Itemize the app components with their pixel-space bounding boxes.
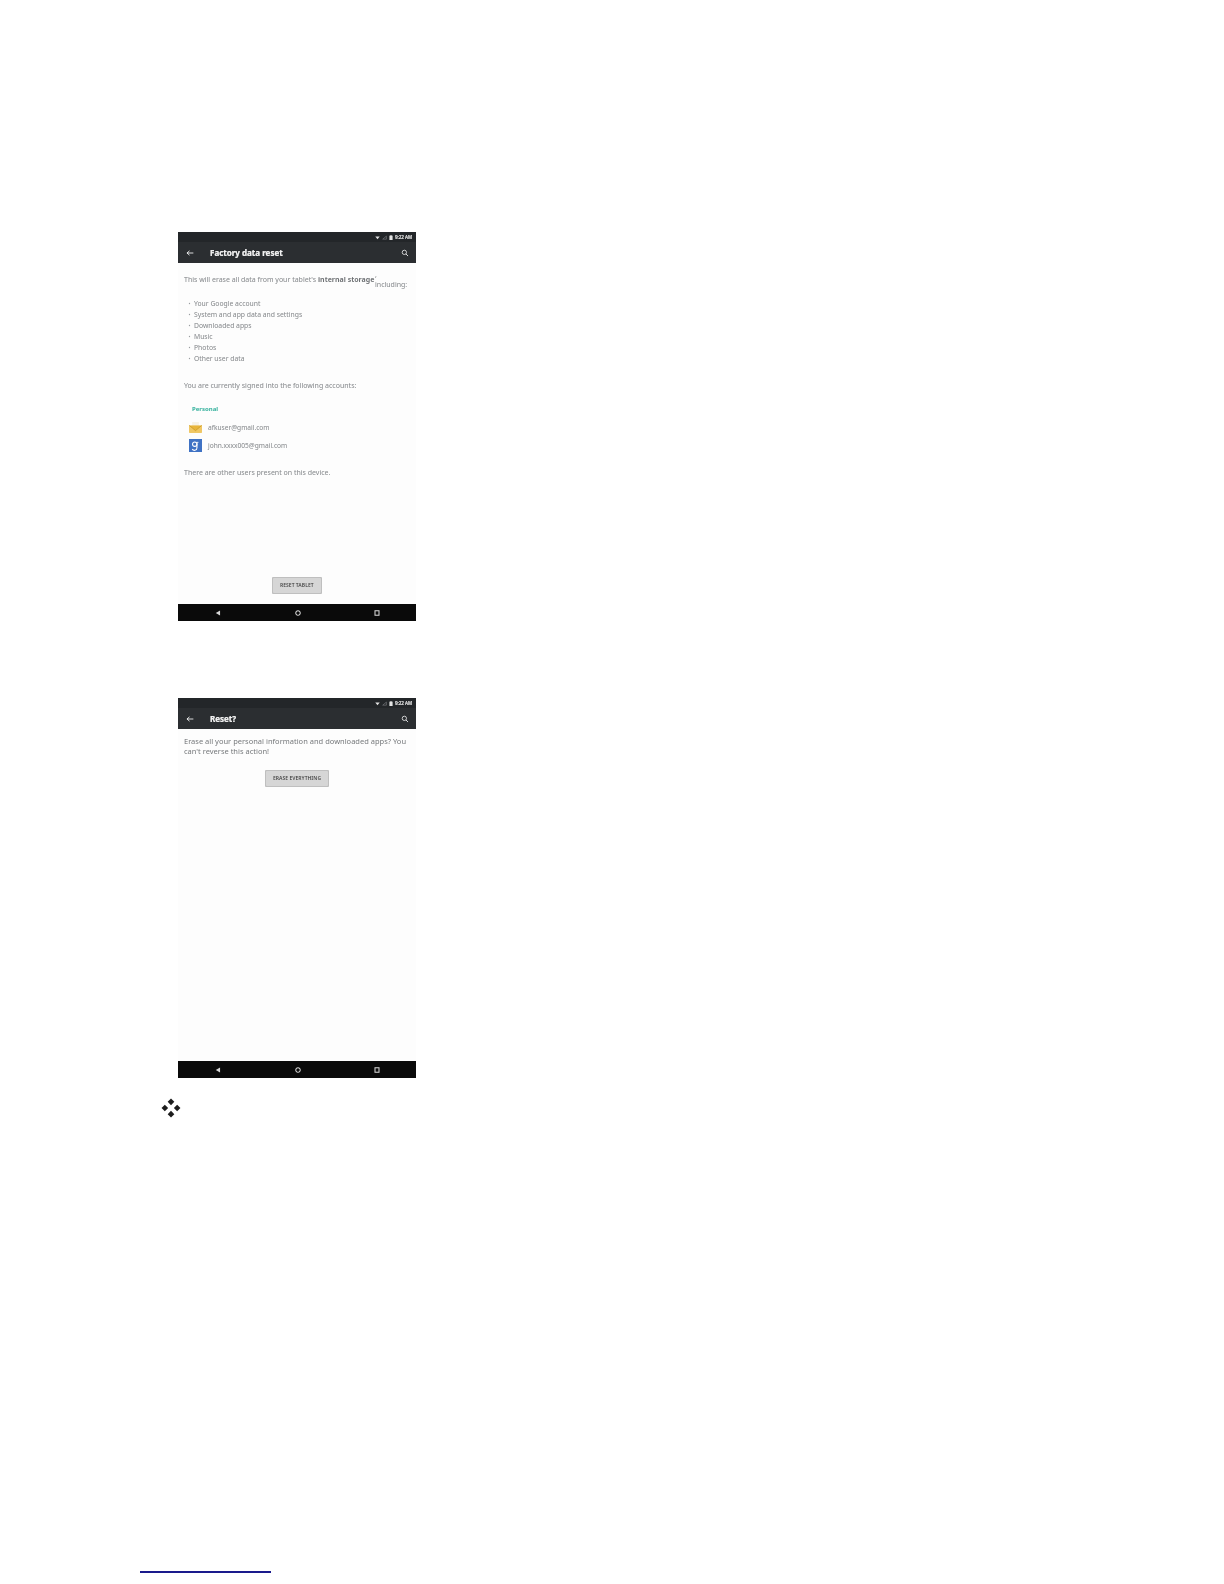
staticText: You are currently signed into the follow… bbox=[184, 381, 357, 391]
staticText: Your Google account bbox=[194, 299, 261, 308]
staticText: Photos bbox=[194, 343, 217, 352]
button[interactable]: ERASE EVERYTHING bbox=[266, 771, 328, 786]
staticText: 9:22 AM bbox=[395, 234, 413, 240]
staticText: john.xxxx005@gmail.com bbox=[208, 441, 288, 450]
button[interactable]: afkuser@gmail.com bbox=[184, 421, 410, 434]
button[interactable]: Search bbox=[398, 712, 411, 725]
staticText: ERASE EVERYTHING bbox=[273, 775, 321, 782]
staticText: Reset? bbox=[210, 713, 237, 724]
staticText: Downloaded apps bbox=[194, 321, 252, 330]
button[interactable]: Back bbox=[178, 604, 258, 621]
staticText: There are other users present on this de… bbox=[184, 468, 331, 478]
staticText: Erase all your personal information and … bbox=[184, 736, 410, 756]
button[interactable]: Recent apps bbox=[337, 1061, 416, 1078]
staticText: System and app data and settings bbox=[194, 310, 303, 319]
button[interactable]: Search bbox=[398, 246, 411, 259]
staticText: This will erase all data from your table… bbox=[184, 275, 318, 285]
button[interactable]: RESET TABLET bbox=[273, 578, 321, 593]
staticText: RESET TABLET bbox=[280, 582, 314, 589]
button[interactable]: Home bbox=[258, 1061, 337, 1078]
button[interactable]: Home bbox=[258, 604, 337, 621]
staticText: Other user data bbox=[194, 354, 245, 363]
button[interactable]: Back bbox=[178, 1061, 258, 1078]
staticText: Factory data reset bbox=[210, 247, 283, 258]
staticText: Personal bbox=[192, 405, 219, 413]
button[interactable]: Navigate up bbox=[183, 712, 196, 725]
staticText: Music bbox=[194, 332, 213, 341]
staticText: internal storage bbox=[318, 275, 375, 285]
button[interactable]: Navigate up bbox=[183, 246, 196, 259]
staticText: 9:22 AM bbox=[395, 700, 413, 706]
button[interactable]: Recent apps bbox=[337, 604, 416, 621]
staticText: , including: bbox=[375, 270, 410, 290]
button[interactable]: john.xxxx005@gmail.com bbox=[184, 439, 410, 452]
staticText: afkuser@gmail.com bbox=[208, 423, 270, 432]
